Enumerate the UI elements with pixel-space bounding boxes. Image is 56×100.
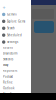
button[interactable]: Gemini <box>0 11 31 18</box>
staticText: Aircraft <box>3 92 12 96</box>
button[interactable]: Aircraft <box>0 91 31 97</box>
button[interactable]: Brainstorm <box>0 50 31 56</box>
staticText: Search <box>7 26 15 30</box>
button[interactable]: Essay <box>0 62 31 68</box>
staticText: Scheduled <box>7 33 22 37</box>
button[interactable]: Reporters <box>0 68 31 74</box>
button[interactable]: Explore Gems <box>0 18 31 25</box>
staticText: Explore Gems <box>7 20 25 23</box>
staticText: Refine <box>3 81 13 84</box>
staticText: Outlook <box>3 86 14 90</box>
button[interactable]: Refine <box>0 79 31 85</box>
button[interactable]: Scheduled <box>0 32 31 39</box>
staticText: Podcast <box>3 75 13 78</box>
staticText: Settings <box>7 40 18 44</box>
button[interactable]: New chat <box>0 5 8 11</box>
staticText: Reporters <box>3 69 17 72</box>
button[interactable]: Statistics <box>0 56 31 62</box>
staticText: Essay <box>3 63 8 67</box>
button[interactable]: Settings <box>0 39 31 45</box>
staticText: Brainstorm <box>3 52 17 55</box>
button[interactable]: Outlook <box>0 85 31 91</box>
button[interactable]: Search <box>0 25 31 32</box>
staticText: + <box>2 4 5 12</box>
staticText: Statistics <box>3 57 13 61</box>
staticText: Recent <box>3 46 13 50</box>
staticText: Gemini <box>7 13 17 16</box>
button[interactable]: Podcast <box>0 74 31 79</box>
